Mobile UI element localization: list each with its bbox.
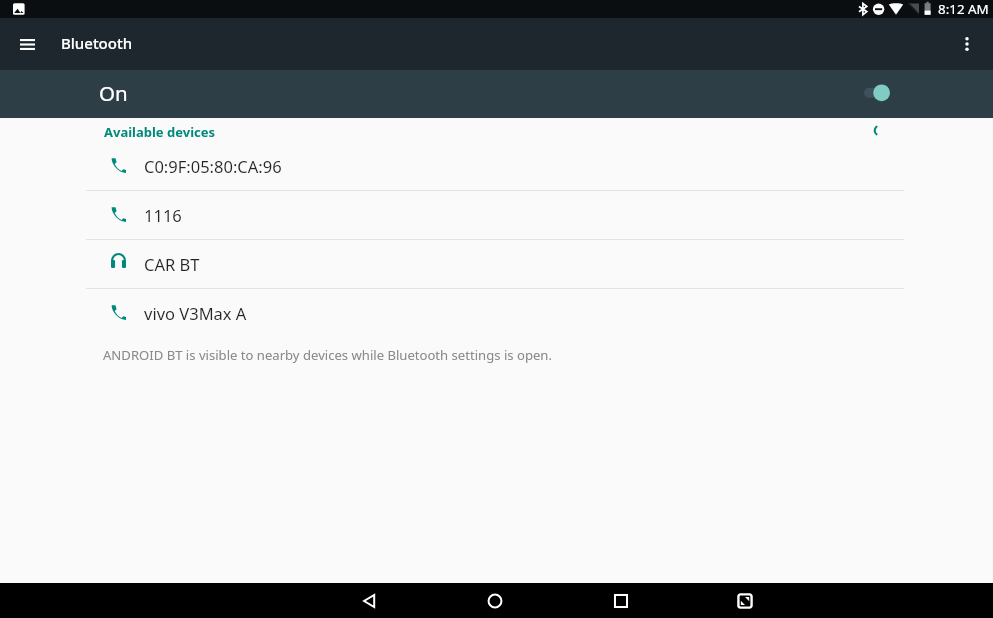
button[interactable]: 1116	[0, 191, 993, 239]
staticText: 8:12 AM	[938, 0, 989, 18]
staticText: CAR BT	[144, 253, 200, 275]
button[interactable]: Back	[352, 583, 388, 618]
button[interactable]: On	[0, 70, 993, 118]
button[interactable]: vivo V3Max A	[0, 289, 993, 337]
button[interactable]: CAR BT	[0, 240, 993, 288]
staticText: C0:9F:05:80:CA:96	[144, 155, 282, 177]
button[interactable]: More options	[949, 26, 985, 62]
button[interactable]: Screenshot	[727, 583, 763, 618]
button[interactable]: Bluetooth on	[855, 77, 899, 111]
staticText: On	[99, 79, 128, 107]
button[interactable]: Open navigation menu	[9, 26, 45, 62]
staticText: Available devices	[104, 123, 216, 141]
staticText: 1116	[144, 204, 182, 226]
staticText: Bluetooth	[61, 33, 133, 53]
button[interactable]: Home	[477, 583, 513, 618]
button[interactable]: C0:9F:05:80:CA:96	[0, 142, 993, 190]
button[interactable]: Recent apps	[603, 583, 639, 618]
staticText: vivo V3Max A	[144, 302, 247, 324]
staticText: ANDROID BT is visible to nearby devices …	[103, 346, 552, 364]
